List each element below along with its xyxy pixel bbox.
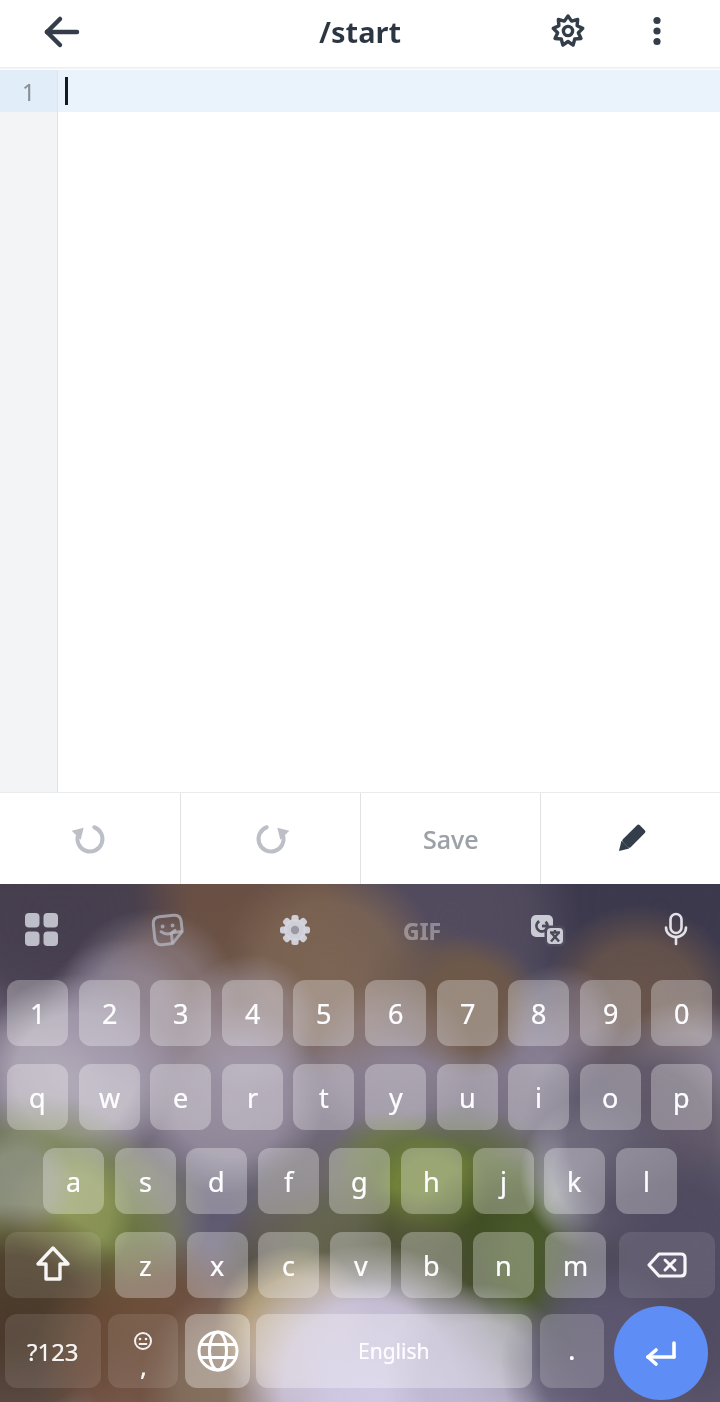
button[interactable] [546,9,590,53]
button[interactable]: 2 [79,980,140,1046]
button[interactable]: h [401,1148,462,1214]
button[interactable]: m [545,1232,606,1298]
staticText: 5 [316,995,332,1032]
button[interactable]: 8 [508,980,569,1046]
button[interactable]: 1 [7,980,68,1046]
staticText: 9 [603,995,619,1032]
staticText: y [389,1079,403,1116]
button[interactable] [5,1232,101,1298]
staticText: t [319,1079,329,1116]
button[interactable]: f [258,1148,319,1214]
button[interactable]: j [473,1148,534,1214]
staticText: p [673,1079,690,1116]
button[interactable]: 3 [150,980,211,1046]
button[interactable]: GIF [395,908,449,952]
button[interactable]: c [258,1232,319,1298]
button[interactable]: w [79,1064,140,1130]
staticText: b [423,1247,440,1284]
staticText: a [66,1163,82,1200]
button[interactable]: . [540,1314,604,1388]
staticText: , [140,1348,147,1383]
staticText: o [602,1079,619,1116]
button[interactable]: 6 [365,980,426,1046]
staticText: s [139,1163,152,1200]
button[interactable] [20,908,64,952]
staticText: z [139,1247,152,1284]
button[interactable] [185,1314,250,1388]
button[interactable] [619,1232,715,1298]
button[interactable] [58,70,720,792]
button[interactable]: n [473,1232,534,1298]
button[interactable]: 7 [437,980,498,1046]
staticText: q [29,1079,46,1116]
button[interactable]: Save [361,793,540,884]
button[interactable]: ?123 [5,1314,101,1388]
staticText: 6 [388,995,404,1032]
staticText: 1 [30,995,46,1032]
button[interactable] [146,908,190,952]
button[interactable] [654,908,698,952]
button[interactable]: e [150,1064,211,1130]
staticText: i [535,1079,542,1116]
staticText: c [282,1247,295,1284]
button[interactable]: b [401,1232,462,1298]
staticText: j [500,1163,507,1200]
button[interactable]: z [115,1232,176,1298]
button[interactable]: q [7,1064,68,1130]
button[interactable]: English [256,1314,532,1388]
button[interactable]: u [437,1064,498,1130]
staticText: English [358,1337,430,1366]
staticText: v [354,1247,368,1284]
staticText: m [563,1247,589,1284]
staticText: l [643,1163,650,1200]
staticText: ?123 [27,1335,79,1368]
button[interactable] [526,908,570,952]
staticText: 7 [460,995,476,1032]
button[interactable] [541,793,720,884]
button[interactable]: d [186,1148,247,1214]
staticText: 1 [22,76,36,107]
staticText: n [495,1247,512,1284]
button[interactable] [614,1306,708,1400]
staticText: k [567,1163,582,1200]
button[interactable]: v [330,1232,391,1298]
staticText: d [208,1163,225,1200]
staticText: 3 [173,995,189,1032]
staticText: r [247,1079,259,1116]
staticText: . [568,1330,576,1368]
button[interactable]: g [329,1148,390,1214]
button[interactable]: t [293,1064,354,1130]
button[interactable]: p [651,1064,712,1130]
button[interactable]: a [43,1148,104,1214]
button[interactable] [0,793,180,884]
button[interactable]: s [115,1148,176,1214]
staticText: 4 [245,995,261,1032]
button[interactable]: 0 [651,980,712,1046]
button[interactable] [635,9,679,53]
staticText: 2 [102,995,118,1032]
button[interactable]: l [616,1148,677,1214]
staticText: u [459,1079,476,1116]
button[interactable] [40,10,84,54]
button[interactable]: i [508,1064,569,1130]
button[interactable] [273,908,317,952]
staticText: 0 [674,995,690,1032]
staticText: h [423,1163,440,1200]
button[interactable]: 9 [580,980,641,1046]
staticText: g [351,1163,368,1200]
button[interactable]: k [544,1148,605,1214]
button[interactable]: , [108,1314,178,1388]
button[interactable]: y [365,1064,426,1130]
staticText: 8 [531,995,547,1032]
button[interactable]: 4 [222,980,283,1046]
staticText: w [99,1079,121,1116]
staticText: GIF [403,915,442,946]
button[interactable]: o [580,1064,641,1130]
button[interactable]: x [187,1232,248,1298]
button[interactable] [181,793,360,884]
staticText: e [173,1079,189,1116]
staticText: x [210,1247,225,1284]
button[interactable]: 5 [293,980,354,1046]
button[interactable]: r [222,1064,283,1130]
staticText: Save [423,822,479,856]
